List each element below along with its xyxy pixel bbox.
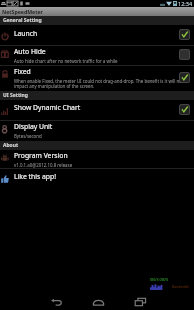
button[interactable]: Program Version — [0, 150, 194, 168]
staticText: Display Unit — [14, 122, 53, 131]
staticText: When enable Fixed, the meter UI could no… — [14, 78, 186, 89]
staticText: Like this app! — [14, 172, 56, 181]
button[interactable]: Display Unit — [0, 121, 194, 141]
staticText: Auto hide chart after no network traffic… — [14, 58, 118, 64]
staticText: 0B/S 0B/S — [150, 277, 169, 282]
staticText: General Setting — [3, 17, 42, 24]
staticText: 12:34 — [178, 0, 193, 7]
staticText: About — [3, 142, 19, 149]
button[interactable]: Show Dynamic Chart — [0, 100, 194, 120]
button[interactable]: Like this app! — [0, 169, 194, 188]
button[interactable]: Checked — [180, 105, 189, 114]
staticText: Fixed — [14, 67, 31, 76]
staticText: v1.0.1.a0@2012.10.8 release — [14, 162, 73, 168]
button[interactable]: Checked — [180, 73, 189, 82]
button[interactable]: Recent apps — [125, 292, 155, 310]
staticText: Launch — [14, 29, 38, 38]
button[interactable]: Checked — [180, 30, 189, 39]
button[interactable]: Launch — [0, 25, 194, 45]
button[interactable]: Auto Hide — [0, 46, 194, 65]
staticText: Show Dynamic Chart — [14, 103, 81, 112]
button[interactable]: Fixed — [0, 66, 194, 91]
staticText: Program Version — [14, 151, 68, 160]
staticText: Bandwidth — [172, 284, 190, 289]
staticText: UI Setting — [3, 92, 29, 99]
staticText: NetSpeedMeter — [2, 8, 43, 15]
button[interactable]: Home — [83, 292, 113, 310]
staticText: Bytes/second — [14, 133, 42, 139]
staticText: Auto Hide — [14, 47, 46, 56]
button[interactable]: Back — [41, 292, 71, 310]
